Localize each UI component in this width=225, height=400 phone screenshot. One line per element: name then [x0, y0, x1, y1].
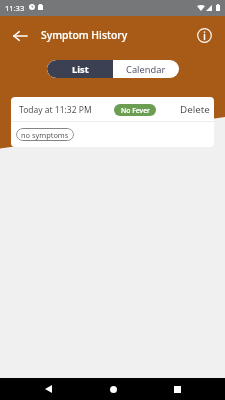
button[interactable]: Info: [192, 23, 217, 48]
staticText: Symptom History: [41, 28, 128, 42]
button[interactable]: No Fever: [114, 104, 156, 116]
button[interactable]: Back: [31, 378, 65, 400]
button[interactable]: Delete: [180, 103, 210, 116]
staticText: no symptoms: [21, 130, 69, 140]
button[interactable]: Today at 11:32 PM: [11, 97, 214, 147]
staticText: List: [72, 63, 89, 76]
button[interactable]: Recents: [160, 378, 194, 400]
button[interactable]: Calendar: [113, 60, 179, 78]
staticText: Calendar: [126, 63, 166, 76]
staticText: Delete: [180, 103, 210, 116]
button[interactable]: List: [47, 60, 113, 78]
button[interactable]: Back: [5, 24, 35, 48]
staticText: Today at 11:32 PM: [19, 104, 92, 116]
staticText: 11:33: [5, 3, 25, 13]
button[interactable]: Home: [96, 378, 130, 400]
staticText: No Fever: [121, 106, 150, 115]
